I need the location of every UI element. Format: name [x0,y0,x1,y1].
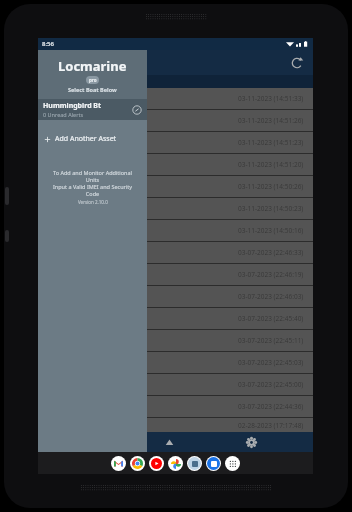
staticText: Hummingbird Bt [43,101,102,111]
button[interactable]: 03-07-2023 (22:46:03) [38,286,313,307]
button[interactable]: 03-11-2023 (14:51:26) [38,110,313,131]
button[interactable]: 03-11-2023 (14:50:26) [38,176,313,197]
staticText: 03-07-2023 (22:45:00) [238,380,304,389]
staticText: 03-11-2023 (14:51:23) [238,138,304,147]
button[interactable]: 03-07-2023 (22:46:33) [38,242,313,263]
other: Selected [132,105,142,115]
staticText: Version 2.10.0 [78,199,108,205]
staticText: Select Boat Below [68,86,117,93]
staticText: 03-11-2023 (14:50:26) [238,182,304,191]
button[interactable]: App [130,456,145,471]
staticText: pro [89,77,97,83]
staticText: 0 Unread Alerts [43,111,84,118]
staticText: Last Update: a moment ago [46,77,131,86]
staticText: 03-07-2023 (22:45:11) [238,336,304,345]
button[interactable]: 03-07-2023 (22:46:19) [38,264,313,285]
button[interactable]: App [111,456,126,471]
staticText: 03-07-2023 (22:45:40) [238,314,304,323]
staticText: To Add and Monitor Additional Units [46,169,139,183]
button[interactable]: 03-07-2023 (22:44:36) [38,396,313,417]
button[interactable]: 02-28-2023 (17:17:48) [38,418,313,432]
staticText: 03-11-2023 (14:51:26) [238,116,304,125]
staticText: 03-07-2023 (22:45:03) [238,358,304,367]
staticText: 03-07-2023 (22:46:19) [238,270,304,279]
button[interactable]: App [149,456,164,471]
staticText: 03-11-2023 (14:50:16) [238,226,304,235]
button[interactable]: 03-07-2023 (22:45:00) [38,374,313,395]
staticText: 03-11-2023 (14:51:20) [238,160,304,169]
staticText: 03-11-2023 (14:50:23) [238,204,304,213]
staticText: 03-07-2023 (22:44:36) [238,402,304,411]
button[interactable]: Hummingbird Bt [38,99,147,120]
staticText: Add Another Asset [55,134,117,144]
button[interactable]: 03-11-2023 (14:50:16) [38,220,313,241]
button[interactable]: 03-07-2023 (22:45:40) [38,308,313,329]
staticText: 03-07-2023 (22:46:03) [238,292,304,301]
staticText: 03-07-2023 (22:46:33) [238,248,304,257]
button[interactable]: 03-07-2023 (22:45:03) [38,352,313,373]
button[interactable]: 03-11-2023 (14:51:23) [38,132,313,153]
staticText: 8:56 [42,40,54,48]
button[interactable]: Add Another Asset [38,131,147,147]
button[interactable]: 03-11-2023 (14:51:33) [38,88,313,109]
staticText: 02-28-2023 (17:17:48) [238,421,304,430]
button[interactable]: 03-11-2023 (14:51:20) [38,154,313,175]
staticText: 03-11-2023 (14:51:33) [238,94,304,103]
button[interactable]: App [187,456,202,471]
button[interactable]: App [225,456,240,471]
button[interactable]: App [168,456,183,471]
button[interactable]: App [206,456,221,471]
button[interactable]: Refresh [287,53,307,73]
button[interactable]: 03-07-2023 (22:45:11) [38,330,313,351]
staticText: Input a Valid IMEI and Security Code [46,183,139,197]
button[interactable]: 03-11-2023 (14:50:23) [38,198,313,219]
staticText: Hummingbird Bt [46,55,133,70]
button[interactable]: Settings [210,432,292,452]
button[interactable]: Expand [128,432,210,452]
staticText: Locmarine [58,57,127,75]
